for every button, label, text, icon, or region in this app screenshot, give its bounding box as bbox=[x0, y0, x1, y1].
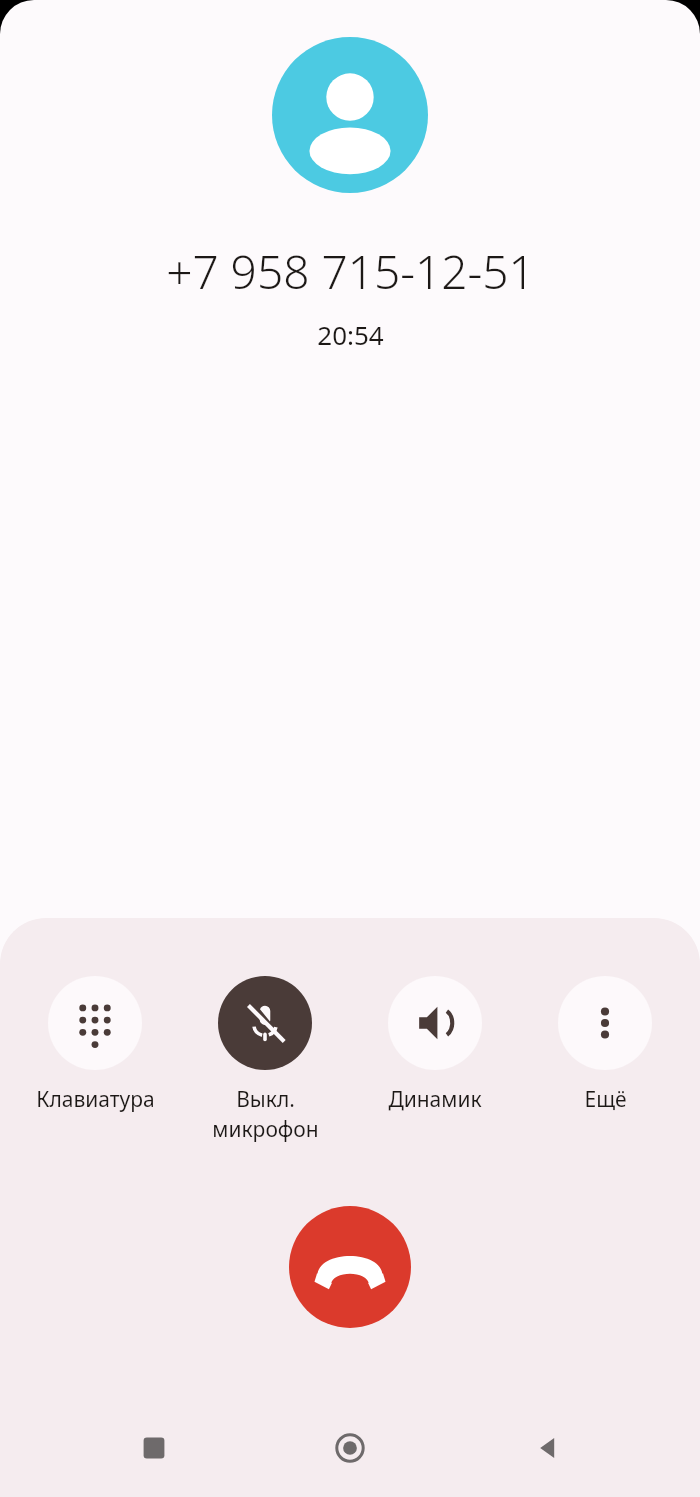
button[interactable]: Выключить микрофон bbox=[190, 974, 340, 1145]
staticText: Выкл. микрофон bbox=[212, 1085, 319, 1143]
staticText: Динамик bbox=[388, 1085, 482, 1114]
staticText: Ещё bbox=[584, 1085, 627, 1114]
button[interactable]: Недавние bbox=[111, 1405, 197, 1491]
button[interactable]: Завершить вызов bbox=[289, 1206, 411, 1328]
button[interactable]: Главный экран bbox=[307, 1405, 393, 1491]
button[interactable]: Ещё bbox=[530, 974, 680, 1116]
button[interactable]: Назад bbox=[504, 1405, 590, 1491]
button[interactable]: Динамик bbox=[360, 974, 510, 1116]
button[interactable]: Клавиатура bbox=[20, 974, 170, 1116]
staticText: Клавиатура bbox=[36, 1085, 155, 1114]
staticText: +7 958 715-12-51 bbox=[166, 240, 535, 303]
staticText: 20:54 bbox=[317, 317, 384, 352]
